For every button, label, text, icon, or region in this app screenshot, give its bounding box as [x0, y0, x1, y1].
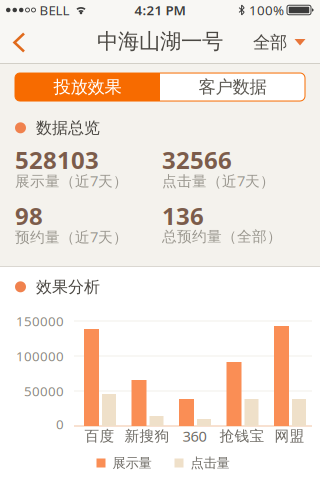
staticText: 360 [182, 426, 206, 446]
staticText: 50000 [24, 382, 64, 400]
button[interactable]: 筛选 全部 [253, 30, 320, 53]
button[interactable]: 客户数据 [160, 73, 305, 101]
staticText: 中海山湖一号 [97, 28, 223, 55]
staticText: 98 [15, 200, 43, 232]
staticText: 4:21 PM [134, 1, 185, 19]
staticText: 数据总览 [36, 118, 100, 138]
button[interactable]: Back [0, 30, 26, 52]
staticText: 展示量 [112, 455, 151, 471]
staticText: 全部 [253, 32, 287, 53]
staticText: 点击量 [190, 455, 229, 471]
staticText: 点击量（近7天） [162, 171, 275, 190]
staticText: 总预约量（全部） [162, 228, 282, 246]
button[interactable]: 投放效果 [15, 73, 160, 101]
staticText: 百度 [84, 427, 114, 445]
staticText: 136 [162, 200, 204, 232]
staticText: 预约量（近7天） [15, 227, 128, 246]
staticText: 150000 [16, 312, 64, 330]
staticText: 投放效果 [53, 76, 121, 98]
staticText: 100% [249, 1, 284, 19]
staticText: 新搜狗 [124, 427, 169, 445]
staticText: 网盟 [274, 427, 304, 445]
staticText: 效果分析 [36, 277, 100, 297]
staticText: 抢钱宝 [219, 427, 264, 445]
staticText: 客户数据 [198, 76, 266, 98]
staticText: 0 [56, 415, 64, 433]
staticText: 528103 [15, 144, 99, 176]
staticText: 32566 [162, 144, 232, 176]
staticText: 展示量（近7天） [15, 171, 128, 190]
staticText: 100000 [16, 347, 64, 365]
staticText: BELL [39, 1, 69, 19]
